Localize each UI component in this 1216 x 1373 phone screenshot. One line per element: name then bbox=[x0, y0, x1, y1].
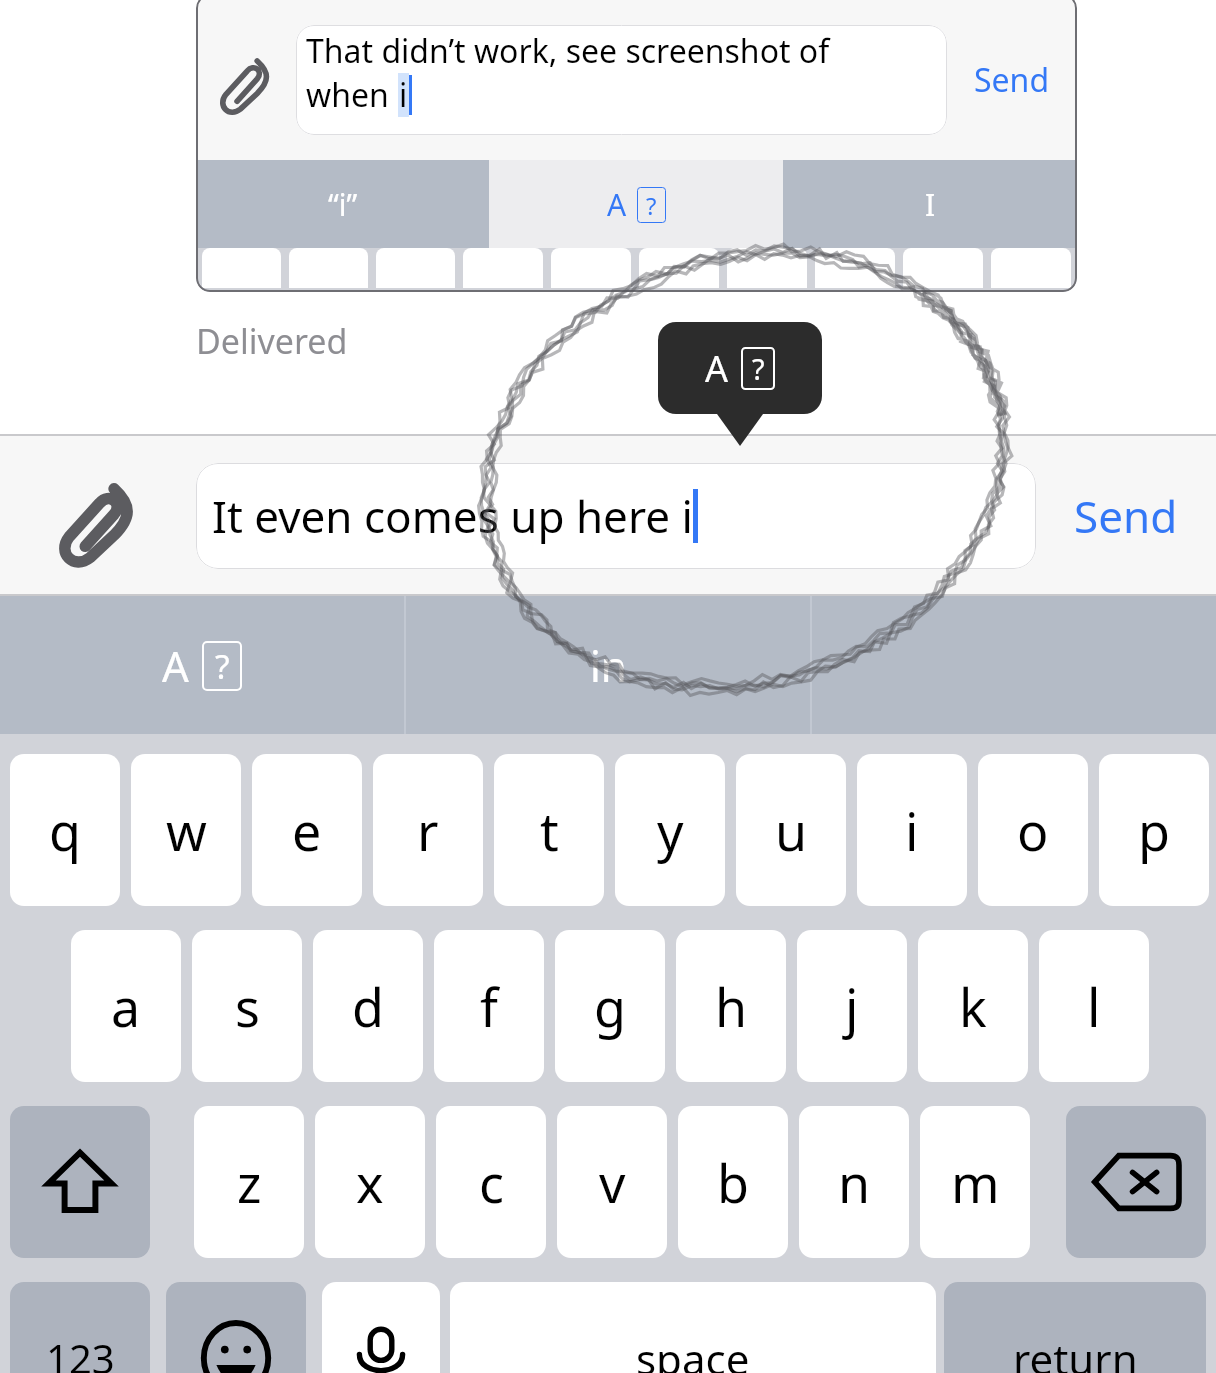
button[interactable]: g bbox=[555, 930, 665, 1082]
staticText: i bbox=[905, 795, 919, 866]
button[interactable]: u bbox=[736, 754, 846, 906]
staticText: A bbox=[607, 184, 627, 225]
button[interactable]: f bbox=[434, 930, 544, 1082]
staticText: t bbox=[540, 795, 559, 866]
staticText: That didn’t work, see screenshot of bbox=[306, 29, 830, 73]
button[interactable]: space bbox=[450, 1282, 936, 1373]
button[interactable]: v bbox=[557, 1106, 667, 1258]
staticText: c bbox=[479, 1147, 504, 1218]
staticText: ? bbox=[752, 349, 765, 388]
button[interactable]: Autocorrect suggestion bbox=[658, 322, 822, 414]
staticText: k bbox=[959, 971, 987, 1042]
button[interactable]: j bbox=[797, 930, 907, 1082]
button[interactable]: Send bbox=[947, 0, 1077, 160]
button[interactable]: x bbox=[315, 1106, 425, 1258]
staticText: y bbox=[657, 795, 684, 866]
staticText: return bbox=[1013, 1330, 1138, 1373]
staticText: Delivered bbox=[196, 318, 348, 364]
button[interactable]: Shift bbox=[10, 1106, 150, 1258]
button[interactable]: Attach bbox=[0, 436, 196, 596]
staticText: ? bbox=[215, 643, 230, 689]
staticText: I bbox=[925, 184, 936, 225]
button[interactable]: p bbox=[1099, 754, 1209, 906]
button[interactable]: Delete bbox=[1066, 1106, 1206, 1258]
button[interactable]: w bbox=[131, 754, 241, 906]
staticText: d bbox=[352, 971, 384, 1042]
button[interactable]: return bbox=[944, 1282, 1206, 1373]
button[interactable]: Emoji bbox=[166, 1282, 306, 1373]
staticText: o bbox=[1017, 795, 1049, 866]
staticText: z bbox=[237, 1147, 262, 1218]
button[interactable]: m bbox=[920, 1106, 1030, 1258]
button[interactable]: t bbox=[494, 754, 604, 906]
button[interactable] bbox=[812, 596, 1216, 734]
button[interactable]: A bbox=[489, 160, 783, 248]
button[interactable]: n bbox=[799, 1106, 909, 1258]
button[interactable]: q bbox=[10, 754, 120, 906]
staticText: g bbox=[594, 971, 626, 1042]
button[interactable]: o bbox=[978, 754, 1088, 906]
staticText: when bbox=[306, 73, 398, 117]
staticText: s bbox=[235, 971, 260, 1042]
staticText: in bbox=[590, 637, 627, 694]
button[interactable]: a bbox=[71, 930, 181, 1082]
button[interactable]: z bbox=[194, 1106, 304, 1258]
staticText: It even comes up here i bbox=[212, 486, 693, 546]
button[interactable]: 123 bbox=[10, 1282, 150, 1373]
button[interactable]: e bbox=[252, 754, 362, 906]
staticText: e bbox=[292, 795, 322, 866]
staticText: Send bbox=[1074, 486, 1178, 546]
button[interactable]: i bbox=[857, 754, 967, 906]
staticText: j bbox=[845, 971, 859, 1042]
button[interactable]: c bbox=[436, 1106, 546, 1258]
staticText: n bbox=[838, 1147, 871, 1218]
staticText: p bbox=[1138, 795, 1170, 866]
staticText: A bbox=[705, 344, 729, 393]
button[interactable]: l bbox=[1039, 930, 1149, 1082]
staticText: ? bbox=[646, 189, 657, 222]
staticText: 123 bbox=[46, 1331, 115, 1373]
button[interactable]: Send bbox=[1036, 436, 1216, 596]
button[interactable]: Dictation bbox=[322, 1282, 440, 1373]
staticText: h bbox=[715, 971, 748, 1042]
staticText: w bbox=[166, 795, 207, 866]
staticText: m bbox=[951, 1147, 1000, 1218]
button[interactable]: d bbox=[313, 930, 423, 1082]
staticText: i bbox=[399, 73, 408, 117]
staticText: Send bbox=[974, 58, 1050, 102]
staticText: a bbox=[111, 971, 141, 1042]
button[interactable]: Attach bbox=[196, 0, 296, 160]
button[interactable]: h bbox=[676, 930, 786, 1082]
button[interactable]: A bbox=[0, 596, 404, 734]
button[interactable]: s bbox=[192, 930, 302, 1082]
button[interactable]: I bbox=[783, 160, 1077, 248]
staticText: b bbox=[717, 1147, 749, 1218]
button[interactable]: b bbox=[678, 1106, 788, 1258]
button[interactable]: “i” bbox=[196, 160, 489, 248]
button[interactable]: It even comes up here i bbox=[196, 463, 1036, 569]
button[interactable]: y bbox=[615, 754, 725, 906]
button[interactable]: k bbox=[918, 930, 1028, 1082]
staticText: x bbox=[356, 1147, 384, 1218]
button[interactable]: That didn’t work, see screenshot of bbox=[296, 25, 947, 135]
staticText: r bbox=[417, 795, 439, 866]
staticText: “i” bbox=[328, 184, 358, 225]
staticText: l bbox=[1087, 971, 1101, 1042]
staticText: u bbox=[775, 795, 808, 866]
staticText: space bbox=[636, 1330, 750, 1373]
staticText: A bbox=[162, 637, 189, 694]
staticText: v bbox=[599, 1147, 626, 1218]
button[interactable]: in bbox=[406, 596, 810, 734]
staticText: q bbox=[49, 795, 81, 866]
staticText: f bbox=[480, 971, 498, 1042]
button[interactable]: r bbox=[373, 754, 483, 906]
